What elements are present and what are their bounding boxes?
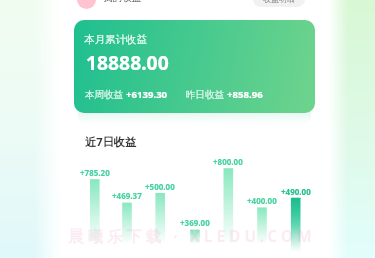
staticText: +369.00 <box>180 217 210 228</box>
button[interactable]: 本月累计收益 <box>74 20 315 113</box>
staticText: 本月累计收益 <box>84 33 147 46</box>
staticText: +400.00 <box>247 195 277 206</box>
staticText: 我的收益 <box>103 0 142 4</box>
staticText: 本周收益 <box>85 89 124 101</box>
staticText: 晨曦乐下载 · XLEDU.COM <box>68 225 316 246</box>
staticText: +500.00 <box>145 181 175 192</box>
staticText: +469.37 <box>112 190 142 201</box>
staticText: +490.00 <box>281 186 311 197</box>
staticText: +6139.30 <box>126 88 168 101</box>
button[interactable]: 收益明细 <box>253 0 305 7</box>
staticText: 18888.00 <box>86 49 169 75</box>
button[interactable]: Profile avatar <box>77 0 96 9</box>
button[interactable]: 我的收益 <box>103 0 142 4</box>
staticText: 收益明细 <box>263 0 295 4</box>
staticText: 昨日收益 <box>186 89 225 101</box>
staticText: +800.00 <box>213 156 243 167</box>
staticText: 近7日收益 <box>85 134 137 149</box>
staticText: +858.96 <box>227 88 263 101</box>
staticText: +785.20 <box>80 167 110 178</box>
